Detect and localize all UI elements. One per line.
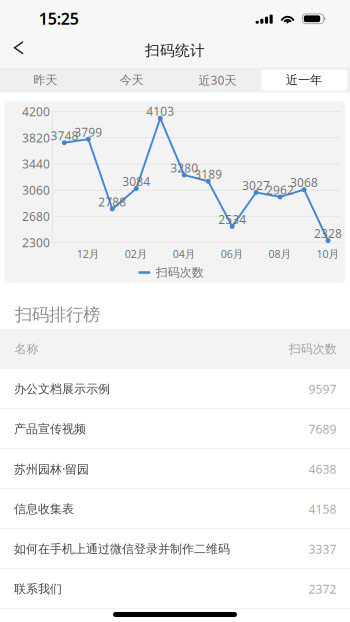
staticText: 10月	[316, 247, 339, 261]
staticText: 扫码次数	[289, 342, 337, 356]
staticText: 3027	[242, 177, 270, 193]
staticText: 9597	[308, 381, 336, 397]
button[interactable]: 信息收集表	[0, 489, 350, 529]
button[interactable]: 联系我们	[0, 569, 350, 609]
staticText: 2372	[308, 581, 336, 597]
staticText: 4158	[308, 501, 336, 517]
staticText: 信息收集表	[14, 502, 74, 516]
staticText: 04月	[173, 247, 196, 261]
staticText: 3748	[50, 127, 78, 143]
staticText: 3189	[194, 166, 222, 182]
staticText: 15:25	[39, 8, 79, 29]
staticText: 2962	[266, 182, 294, 198]
staticText: 产品宣传视频	[14, 422, 86, 436]
staticText: 3084	[122, 173, 150, 189]
staticText: 7689	[308, 421, 336, 437]
button[interactable]: 昨天	[2, 67, 89, 92]
staticText: 4103	[146, 103, 174, 119]
staticText: 3060	[22, 182, 50, 198]
staticText: 08月	[269, 247, 292, 261]
staticText: 昨天	[33, 73, 57, 87]
button[interactable]: Back	[0, 28, 40, 67]
staticText: 2300	[22, 235, 50, 250]
button[interactable]: 产品宣传视频	[0, 409, 350, 449]
staticText: 扫码排行榜	[15, 304, 100, 325]
staticText: 4638	[308, 461, 336, 477]
staticText: 12月	[77, 247, 100, 261]
staticText: 今天	[120, 73, 144, 87]
staticText: 扫码统计	[145, 41, 205, 59]
staticText: 3068	[290, 174, 318, 190]
staticText: 2788	[98, 194, 126, 210]
staticText: 4200	[22, 103, 50, 119]
staticText: 如何在手机上通过微信登录并制作二维码	[14, 542, 230, 556]
staticText: 3799	[74, 124, 102, 140]
staticText: 06月	[221, 247, 244, 261]
staticText: 近30天	[198, 72, 236, 88]
staticText: 3337	[308, 541, 336, 557]
staticText: 2328	[314, 225, 342, 241]
staticText: 办公文档展示示例	[14, 382, 110, 396]
staticText: 02月	[125, 247, 148, 261]
staticText: 联系我们	[14, 582, 62, 596]
button[interactable]: 苏州园林·留园	[0, 449, 350, 489]
staticText: 名称	[15, 342, 39, 356]
button[interactable]: 今天	[88, 67, 176, 92]
staticText: 3280	[170, 160, 198, 176]
staticText: 3440	[22, 156, 50, 172]
staticText: 近一年	[286, 73, 322, 87]
staticText: 2680	[22, 208, 50, 224]
button[interactable]: 办公文档展示示例	[0, 369, 350, 409]
staticText: 苏州园林·留园	[14, 461, 89, 477]
button[interactable]: 如何在手机上通过微信登录并制作二维码	[0, 529, 350, 569]
staticText: 3820	[22, 130, 50, 146]
button[interactable]: 近30天	[174, 67, 261, 92]
staticText: 扫码次数	[156, 265, 204, 280]
staticText: 2534	[218, 211, 246, 227]
button[interactable]: 近一年	[260, 67, 348, 92]
